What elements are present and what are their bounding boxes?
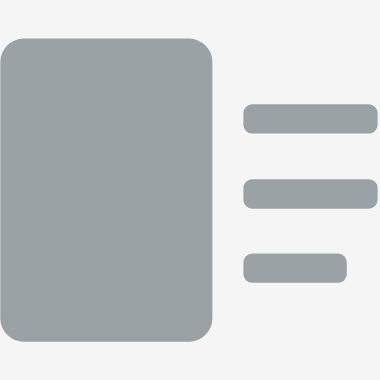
button[interactable]: Cover image	[0, 39, 212, 342]
button[interactable]: Caption	[243, 254, 346, 283]
button[interactable]: Headline	[243, 104, 377, 133]
button[interactable]: Subheading	[243, 179, 377, 209]
